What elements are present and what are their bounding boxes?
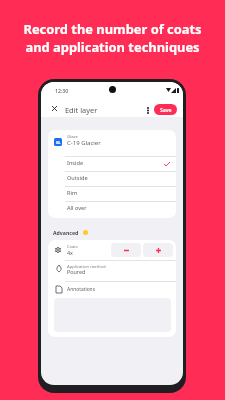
button[interactable]: All over (48, 201, 176, 216)
staticText: GL (56, 140, 61, 145)
staticText: 4x (67, 249, 73, 256)
staticText: Rim (67, 189, 78, 197)
staticText: Advanced (53, 229, 79, 236)
button[interactable]: Close (46, 100, 62, 116)
staticText: Outside (67, 174, 88, 182)
staticText: Record the number of coats and applicati… (23, 20, 202, 56)
button[interactable]: Outside (48, 171, 176, 186)
button[interactable]: Save (154, 104, 177, 115)
staticText: Save (160, 106, 172, 113)
staticText: Application method (67, 264, 106, 270)
staticText: Annotations (67, 286, 95, 293)
staticText: All over (67, 204, 87, 212)
staticText: Glaze (67, 134, 78, 140)
staticText: Edit layer (65, 105, 98, 115)
button[interactable]: Annotations (48, 281, 176, 297)
button[interactable]: Application method (48, 260, 176, 281)
button[interactable]: Inside (48, 156, 176, 171)
staticText: Inside (67, 159, 84, 167)
button[interactable]: Decrease (111, 243, 141, 257)
button[interactable]: Increase (143, 243, 173, 257)
staticText: Poured (67, 268, 86, 275)
staticText: Coats (67, 244, 78, 250)
staticText: 12:30 (55, 87, 69, 94)
staticText: C-19 Glacier (67, 139, 101, 147)
button[interactable]: Rim (48, 186, 176, 201)
button[interactable]: More options (142, 104, 154, 116)
